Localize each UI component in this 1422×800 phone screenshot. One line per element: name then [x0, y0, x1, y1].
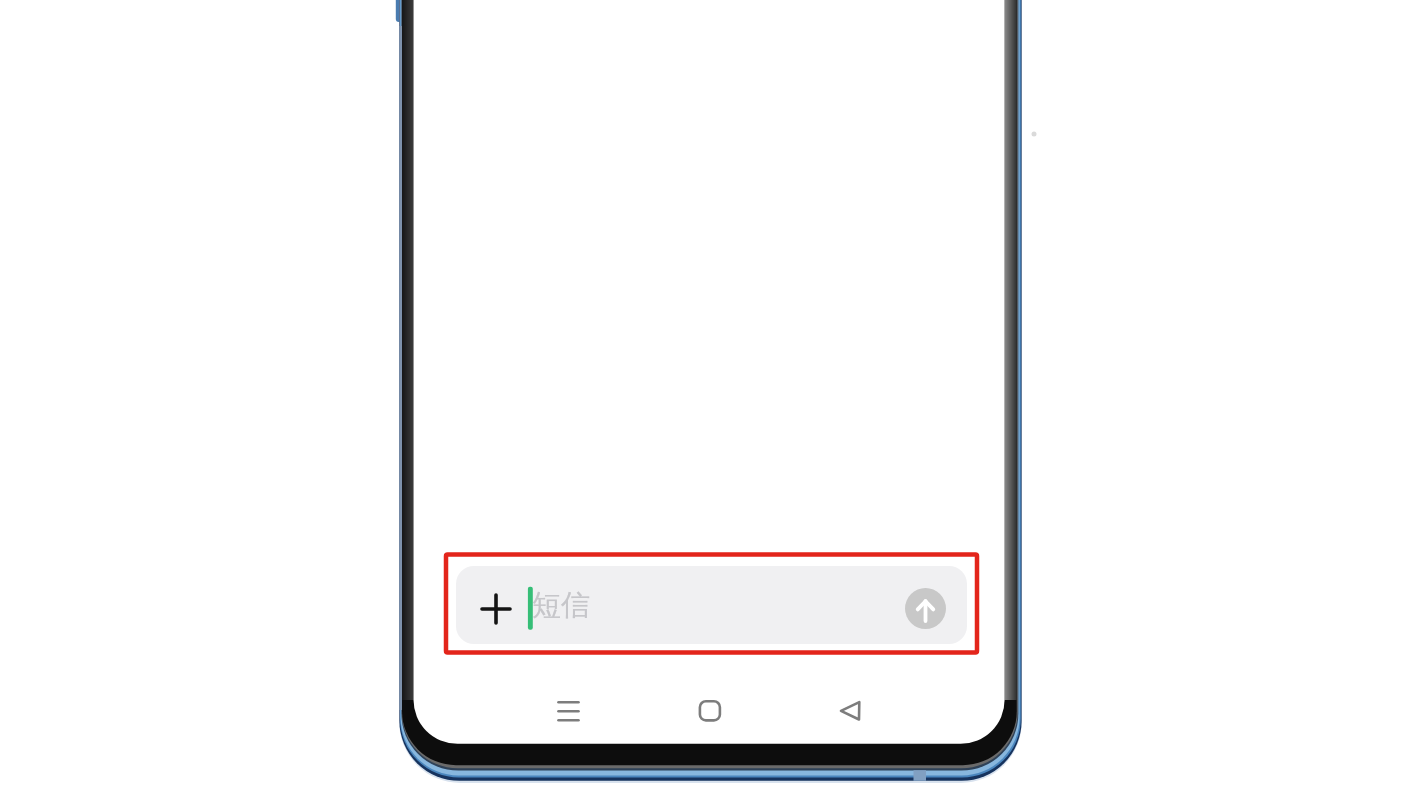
button[interactable] — [836, 696, 866, 726]
button[interactable] — [695, 696, 725, 726]
button[interactable] — [474, 587, 518, 631]
staticText: 短信 — [532, 587, 590, 624]
button[interactable]: 短信 — [456, 566, 967, 644]
button[interactable] — [554, 696, 584, 726]
button[interactable] — [905, 588, 946, 629]
